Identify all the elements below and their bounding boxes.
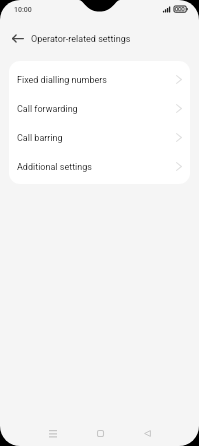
staticText: Call forwarding	[17, 104, 78, 115]
staticText: Call barring	[17, 133, 63, 144]
button[interactable]: Home	[85, 419, 115, 446]
button[interactable]: Back	[3, 25, 32, 51]
button[interactable]: Back	[132, 419, 162, 446]
staticText: 10:00	[14, 6, 32, 14]
button[interactable]: Additional settings	[9, 152, 190, 180]
button[interactable]: Fixed dialling numbers	[9, 65, 190, 94]
button[interactable]: Call forwarding	[9, 94, 190, 123]
staticText: Operator-related settings	[31, 34, 131, 45]
button[interactable]: Call barring	[9, 123, 190, 152]
staticText: Additional settings	[17, 162, 92, 173]
staticText: Fixed dialling numbers	[17, 75, 107, 86]
button[interactable]: Recent apps	[38, 419, 68, 446]
